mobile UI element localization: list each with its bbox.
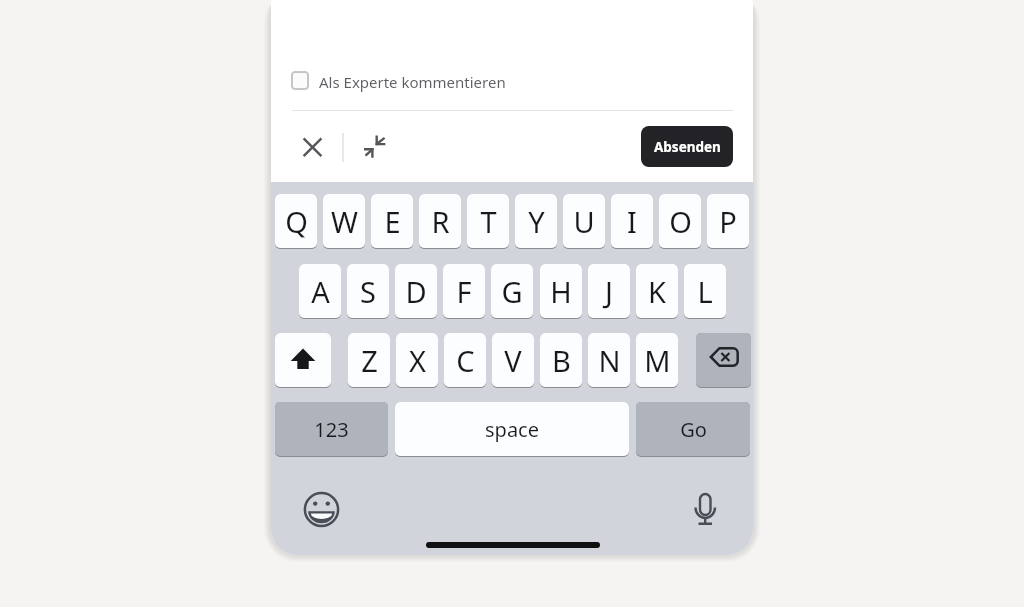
button[interactable]: Q <box>275 194 317 248</box>
button[interactable] <box>291 71 309 90</box>
staticText: Go <box>680 416 707 443</box>
staticText: H <box>550 272 572 311</box>
button[interactable]: space <box>395 402 629 456</box>
button[interactable]: K <box>636 264 678 318</box>
staticText: Y <box>528 202 545 241</box>
button[interactable]: U <box>563 194 605 248</box>
button[interactable]: C <box>444 333 486 387</box>
button[interactable]: T <box>467 194 509 248</box>
staticText: P <box>719 202 737 241</box>
button[interactable]: E <box>371 194 413 248</box>
button[interactable]: I <box>611 194 653 248</box>
button[interactable]: X <box>396 333 438 387</box>
staticText: S <box>360 272 376 311</box>
button[interactable]: B <box>540 333 582 387</box>
staticText: Als Experte kommentieren <box>319 72 506 92</box>
staticText: 123 <box>314 416 349 443</box>
button[interactable]: A <box>299 264 341 318</box>
button[interactable]: H <box>540 264 582 318</box>
staticText: Absenden <box>654 138 721 156</box>
button[interactable]: J <box>588 264 630 318</box>
staticText: W <box>331 202 358 241</box>
staticText: E <box>384 202 401 241</box>
button[interactable]: O <box>659 194 701 248</box>
staticText: A <box>311 272 330 311</box>
button[interactable]: 123 <box>275 402 388 456</box>
button[interactable] <box>275 333 331 387</box>
button[interactable]: Z <box>348 333 390 387</box>
button[interactable] <box>696 333 751 387</box>
button[interactable]: F <box>443 264 485 318</box>
button[interactable] <box>690 490 722 522</box>
staticText: I <box>627 202 637 241</box>
staticText: N <box>598 341 621 380</box>
button[interactable]: G <box>491 264 533 318</box>
button[interactable]: N <box>588 333 630 387</box>
staticText: B <box>552 341 571 380</box>
staticText: T <box>480 202 497 241</box>
staticText: Q <box>285 202 308 241</box>
button[interactable]: W <box>323 194 365 248</box>
staticText: D <box>405 272 427 311</box>
staticText: M <box>644 341 671 380</box>
staticText: V <box>504 341 522 380</box>
button[interactable]: Y <box>515 194 557 248</box>
staticText: K <box>648 272 666 311</box>
button[interactable]: L <box>684 264 726 318</box>
staticText: O <box>669 202 692 241</box>
button[interactable] <box>363 134 387 158</box>
button[interactable]: Go <box>636 402 750 456</box>
staticText: G <box>501 272 523 311</box>
staticText: Z <box>361 341 378 380</box>
button[interactable]: S <box>347 264 389 318</box>
staticText: U <box>573 202 595 241</box>
button[interactable]: M <box>636 333 678 387</box>
staticText: R <box>431 202 450 241</box>
button[interactable]: D <box>395 264 437 318</box>
staticText: F <box>456 272 472 311</box>
button[interactable]: Absenden <box>641 126 733 167</box>
button[interactable]: V <box>492 333 534 387</box>
staticText: C <box>456 341 475 380</box>
staticText: space <box>485 416 539 443</box>
staticText: X <box>409 341 426 380</box>
button[interactable] <box>303 491 340 528</box>
button[interactable] <box>301 135 325 159</box>
staticText: J <box>605 272 613 311</box>
button[interactable]: R <box>419 194 461 248</box>
staticText: L <box>697 272 713 311</box>
button[interactable]: P <box>707 194 749 248</box>
